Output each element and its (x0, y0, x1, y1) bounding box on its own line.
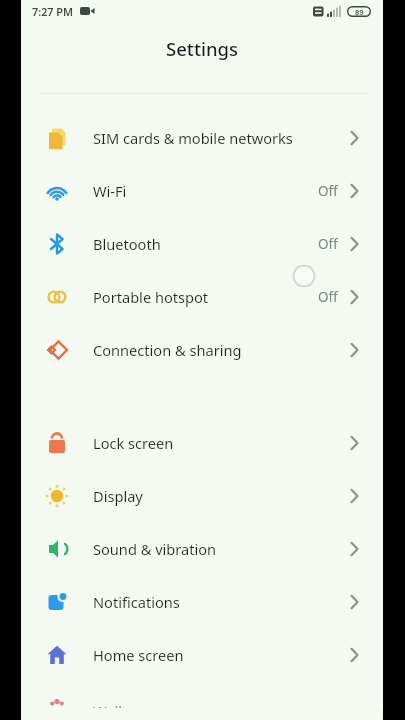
staticText: Off (318, 235, 338, 253)
button[interactable]: Bluetooth (21, 217, 383, 270)
staticText: 7:27 PM (32, 4, 73, 19)
button[interactable]: Display (21, 469, 383, 522)
staticText: Settings (166, 36, 239, 61)
staticText: Off (318, 288, 338, 306)
button[interactable]: Wi-Fi (21, 164, 383, 217)
staticText: Home screen (93, 645, 184, 665)
staticText: Wi-Fi (93, 181, 127, 201)
staticText: Wallpaper (93, 701, 163, 720)
button[interactable]: Notifications (21, 575, 383, 628)
staticText: SIM cards & mobile networks (93, 128, 293, 148)
staticText: Display (93, 486, 143, 506)
button[interactable]: Home screen (21, 628, 383, 681)
staticText: Bluetooth (93, 234, 161, 254)
staticText: Connection & sharing (93, 340, 242, 360)
button[interactable]: Wallpaper (21, 684, 383, 720)
button[interactable]: Connection & sharing (21, 323, 383, 376)
button[interactable]: SIM cards & mobile networks (21, 111, 383, 164)
button[interactable]: Portable hotspot (21, 270, 383, 323)
staticText: Notifications (93, 592, 180, 612)
button[interactable]: Sound & vibration (21, 522, 383, 575)
staticText: Sound & vibration (93, 539, 217, 559)
staticText: Lock screen (93, 433, 174, 453)
staticText: Portable hotspot (93, 287, 209, 307)
staticText: Off (318, 182, 338, 200)
button[interactable]: Lock screen (21, 416, 383, 469)
staticText: 89 (355, 7, 364, 17)
